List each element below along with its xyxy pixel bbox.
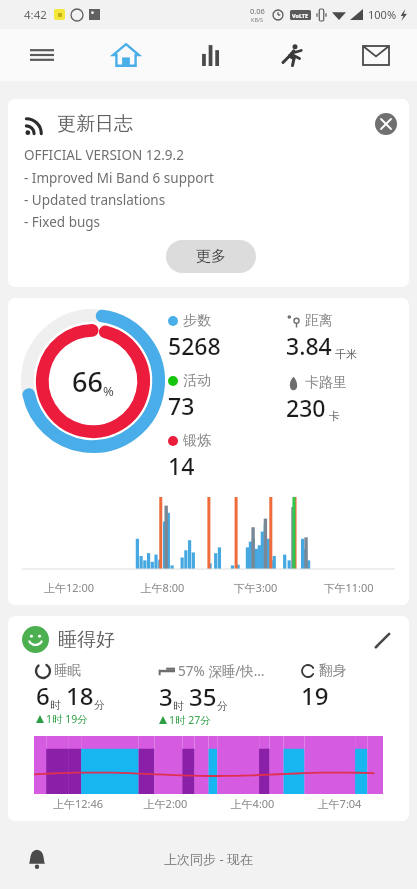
button[interactable]: Notifications [20, 842, 54, 876]
staticText: 73 [168, 390, 195, 421]
staticText: VoLTE [292, 12, 309, 19]
button[interactable]: Progress 66% [18, 306, 168, 456]
staticText: 千米 [335, 347, 357, 361]
staticText: 距离 [305, 312, 333, 330]
staticText: 下午11:00 [302, 580, 395, 595]
staticText: 0.06 [250, 6, 265, 16]
button[interactable]: Messages [334, 29, 417, 81]
staticText: 步数 [183, 312, 211, 330]
staticText: 35 [189, 680, 217, 713]
staticText: % [103, 382, 114, 400]
staticText: - Improved Mi Band 6 support [24, 169, 214, 187]
staticText: 翻身 [319, 662, 346, 679]
button[interactable]: Statistics [168, 29, 251, 81]
staticText: 时 [50, 698, 61, 712]
staticText: 18 [66, 679, 94, 712]
staticText: 锻炼 [183, 432, 211, 450]
staticText: 卡路里 [305, 374, 347, 392]
button[interactable]: Home [84, 29, 168, 81]
staticText: 上午4:00 [209, 796, 296, 811]
staticText: 100% [368, 7, 397, 22]
staticText: 上午8:00 [116, 580, 209, 595]
staticText: 上午12:46 [34, 796, 122, 811]
staticText: 时 [173, 699, 184, 713]
staticText: 57% 深睡/快… [178, 662, 265, 680]
staticText: 活动 [183, 372, 211, 390]
staticText: 卡 [329, 409, 340, 423]
staticText: 230 [286, 392, 326, 423]
staticText: 睡得好 [58, 628, 115, 652]
staticText: 上午2:00 [122, 796, 209, 811]
staticText: 1时 19分 [46, 712, 88, 726]
button[interactable]: 更新日志 [8, 99, 409, 287]
staticText: 1时 27分 [169, 713, 211, 727]
staticText: 更多 [196, 247, 226, 266]
staticText: 4:42 [24, 7, 47, 23]
button[interactable]: Edit [369, 627, 395, 653]
staticText: 睡眠 [54, 662, 81, 679]
staticText: 5268 [168, 330, 221, 361]
staticText: 上午7:04 [296, 796, 383, 811]
staticText: 19 [301, 679, 329, 712]
staticText: 下午3:00 [209, 580, 302, 595]
button[interactable]: 更多 [166, 240, 256, 273]
staticText: OFFICIAL VERSION 12.9.2 [24, 146, 184, 164]
staticText: KB/S [251, 16, 264, 23]
staticText: 3.84 [286, 330, 332, 361]
staticText: 分 [94, 698, 105, 712]
button[interactable]: Workout [251, 29, 334, 81]
staticText: 上午12:00 [22, 580, 116, 595]
staticText: 66 [72, 363, 103, 400]
button[interactable]: 睡得好 [8, 616, 409, 821]
staticText: 更新日志 [57, 112, 133, 136]
button[interactable]: Progress 66% [8, 298, 409, 605]
button[interactable]: Close [375, 113, 397, 135]
staticText: - Updated translations [24, 191, 166, 209]
staticText: 上次同步 - 现在 [164, 850, 253, 868]
button[interactable]: Menu [0, 29, 84, 81]
staticText: 分 [217, 699, 228, 713]
staticText: 3 [159, 680, 173, 713]
staticText: - Fixed bugs [24, 213, 101, 231]
staticText: 6 [36, 679, 50, 712]
staticText: 14 [168, 450, 195, 481]
